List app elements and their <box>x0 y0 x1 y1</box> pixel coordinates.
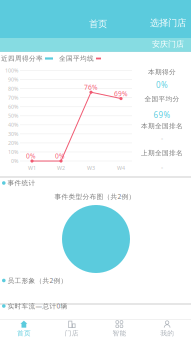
button[interactable]: 门店 <box>48 318 96 340</box>
button[interactable]: 首页 <box>0 318 48 340</box>
staticText: 90% <box>8 76 18 83</box>
staticText: 80% <box>8 85 18 92</box>
staticText: - <box>161 134 163 142</box>
staticText: 首页 <box>17 329 31 337</box>
button[interactable]: 安庆门店 <box>149 37 187 51</box>
staticText: 40% <box>8 121 18 128</box>
staticText: 事件统计 <box>8 179 36 187</box>
staticText: 0% <box>55 152 65 160</box>
staticText: 70% <box>8 94 18 101</box>
staticText: 30% <box>8 130 18 137</box>
staticText: 安庆门店 <box>152 39 184 49</box>
staticText: 实时车流—总计0辆 <box>8 302 68 310</box>
button[interactable]: 我的 <box>143 318 191 340</box>
staticText: W4 <box>117 164 125 172</box>
staticText: 智能 <box>112 329 126 337</box>
staticText: 0% <box>26 152 36 160</box>
button[interactable]: 首页 <box>81 13 115 35</box>
staticText: 我的 <box>160 329 174 337</box>
staticText: 69% <box>114 89 128 98</box>
staticText: 事件类型分布图（共2例） <box>54 192 135 201</box>
staticText: 上期全国排名 <box>141 149 183 157</box>
staticText: 选择门店 <box>150 17 186 29</box>
staticText: 全国平均线 <box>59 54 94 63</box>
staticText: 本期全国排名 <box>141 122 183 130</box>
staticText: 首页 <box>89 18 107 30</box>
staticText: 60% <box>8 103 18 110</box>
staticText: W1 <box>28 164 36 172</box>
staticText: 10% <box>8 148 18 155</box>
staticText: 员工形象（共2例） <box>8 276 68 285</box>
staticText: 100% <box>5 67 18 74</box>
button[interactable]: 智能 <box>95 318 143 340</box>
staticText: 近四周得分率 <box>1 54 43 63</box>
staticText: 20% <box>8 139 18 146</box>
staticText: W3 <box>87 164 95 172</box>
staticText: 76% <box>84 83 98 92</box>
staticText: 0% <box>156 80 168 90</box>
staticText: W2 <box>57 164 65 172</box>
staticText: 门店 <box>65 329 79 337</box>
staticText: 69% <box>153 110 170 120</box>
staticText: 50% <box>8 112 18 119</box>
staticText: 全国平均分 <box>144 95 179 103</box>
staticText: 0% <box>11 157 18 165</box>
staticText: - <box>161 163 163 171</box>
staticText: 本期得分 <box>148 68 176 76</box>
button[interactable]: 选择门店 <box>149 12 187 34</box>
